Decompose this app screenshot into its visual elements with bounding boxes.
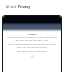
staticText: We take your privacy seriously. This not…: [6, 36, 58, 42]
staticText: AI and: [6, 4, 18, 9]
staticText: Read the full policy to learn more.: [17, 50, 47, 53]
staticText: You can manage settings at any time from…: [6, 43, 58, 49]
button[interactable]: AI and: [6, 0, 60, 13]
staticText: Privacy: [18, 4, 31, 9]
button[interactable]: Continue: [31, 55, 34, 58]
staticText: Privacy: [28, 32, 37, 35]
